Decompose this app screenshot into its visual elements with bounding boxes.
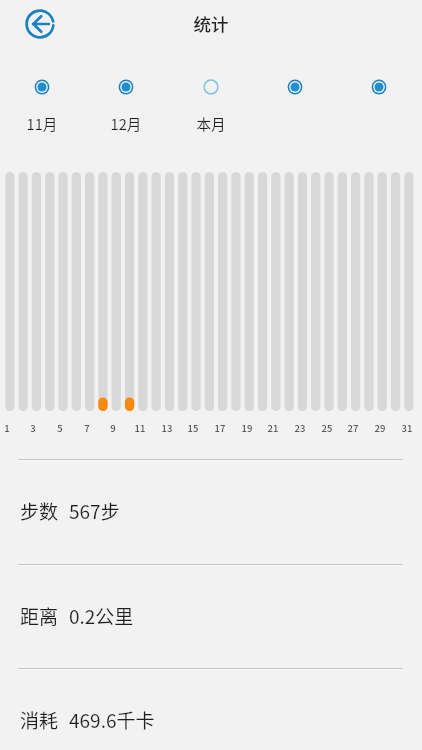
staticText: 15: [178, 421, 208, 435]
button[interactable]: 消耗: [0, 668, 422, 750]
staticText: 消耗: [20, 706, 59, 734]
staticText: 9: [98, 421, 128, 435]
staticText: 5: [45, 421, 75, 435]
button[interactable]: 月份 4: [276, 68, 314, 106]
staticText: 3: [18, 421, 48, 435]
staticText: 1: [0, 421, 22, 435]
staticText: 31: [392, 421, 422, 435]
staticText: 27: [338, 421, 368, 435]
staticText: 21: [258, 421, 288, 435]
button[interactable]: 11月: [23, 68, 61, 106]
staticText: 25: [312, 421, 342, 435]
button[interactable]: 月份 5: [360, 68, 398, 106]
staticText: 12月: [96, 113, 156, 134]
button[interactable]: 12月: [107, 68, 145, 106]
staticText: 步数: [20, 497, 59, 525]
button[interactable]: 步数: [0, 459, 422, 563]
staticText: 7: [72, 421, 102, 435]
staticText: 19: [232, 421, 262, 435]
staticText: 17: [205, 421, 235, 435]
staticText: 469.6千卡: [69, 706, 155, 734]
button[interactable]: 本月: [192, 68, 230, 106]
staticText: 567步: [69, 497, 120, 525]
staticText: 11: [125, 421, 155, 435]
staticText: 本月: [181, 113, 241, 134]
staticText: 距离: [20, 602, 59, 630]
staticText: 29: [365, 421, 395, 435]
button[interactable]: Back: [21, 5, 59, 43]
staticText: 统计: [0, 11, 422, 35]
staticText: 11月: [12, 113, 72, 134]
staticText: 13: [152, 421, 182, 435]
staticText: 23: [285, 421, 315, 435]
staticText: 0.2公里: [69, 602, 134, 630]
button[interactable]: 距离: [0, 564, 422, 668]
